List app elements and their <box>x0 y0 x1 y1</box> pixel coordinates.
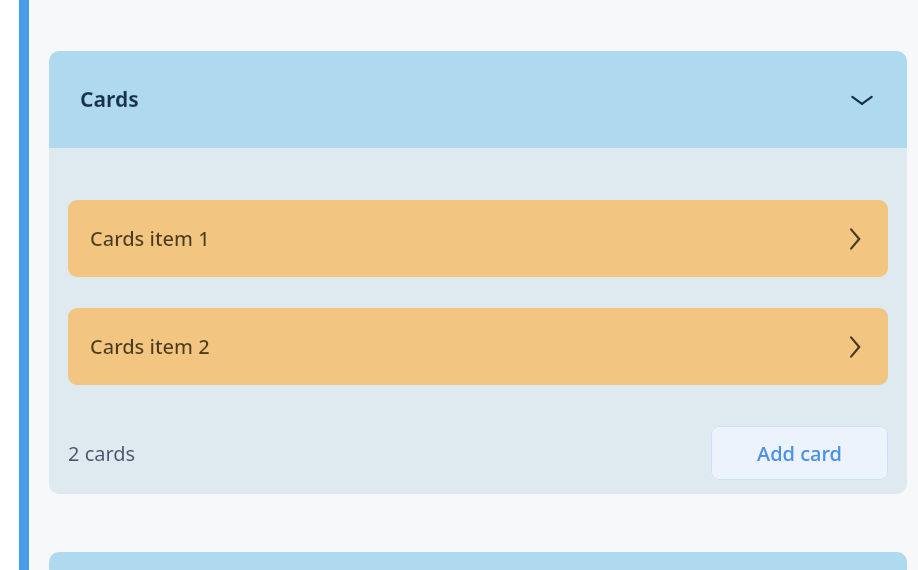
button[interactable] <box>49 552 907 570</box>
staticText: Cards item 2 <box>90 333 210 360</box>
other: Collapse Cards <box>847 85 877 115</box>
staticText: Cards item 1 <box>90 225 210 252</box>
button[interactable]: Cards <box>49 51 907 148</box>
button[interactable]: Add card <box>711 426 888 480</box>
staticText: 2 cards <box>68 440 136 467</box>
button[interactable]: Cards item 2 <box>68 308 888 385</box>
staticText: Add card <box>757 440 842 467</box>
staticText: Cards <box>80 85 139 114</box>
button[interactable]: Cards item 1 <box>68 200 888 277</box>
